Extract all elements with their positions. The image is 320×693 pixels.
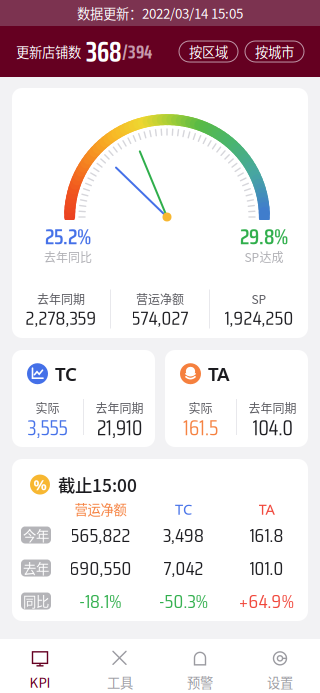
staticText: 104.0 [252, 411, 292, 445]
staticText: 21,910 [97, 411, 142, 445]
staticText: 574,027 [131, 302, 188, 333]
staticText: 按区域 [189, 42, 228, 61]
staticText: 去年同比 [44, 248, 92, 265]
staticText: 3,555 [27, 411, 67, 445]
staticText: -18.1% [79, 585, 122, 617]
staticText: 161.5 [183, 411, 218, 445]
staticText: 营运净额 [136, 290, 184, 307]
staticText: 368 [81, 28, 122, 75]
staticText: 去年同期 [37, 290, 85, 307]
staticText: 工具 [107, 672, 133, 692]
staticText: KPI [29, 672, 50, 692]
staticText: 今年 [23, 525, 49, 545]
staticText: 161.8 [249, 519, 283, 551]
staticText: 101.0 [249, 552, 283, 584]
staticText: 1,924,250 [224, 302, 293, 333]
staticText: 营运净额 [74, 499, 126, 519]
staticText: TA [258, 499, 274, 519]
staticText: 去年 [23, 558, 49, 578]
staticText: 设置 [267, 672, 293, 692]
staticText: 29.8% [240, 220, 288, 254]
staticText: +64.9% [238, 585, 294, 617]
staticText: 565,822 [70, 519, 130, 551]
staticText: 实际 [188, 399, 212, 416]
staticText: 25.2% [45, 220, 91, 254]
staticText: 数据更新：2022/03/14 15:05 [77, 3, 243, 23]
staticText: 截止15:00 [58, 472, 137, 497]
staticText: 按城市 [255, 42, 294, 61]
staticText: TA [208, 361, 230, 386]
staticText: -50.3% [158, 585, 208, 617]
button[interactable]: 工具 [80, 648, 160, 692]
staticText: 7,042 [163, 552, 203, 584]
staticText: 3,498 [163, 519, 204, 551]
staticText: TC [175, 499, 192, 519]
staticText: 去年同期 [95, 399, 143, 416]
staticText: 去年同期 [248, 399, 296, 416]
staticText: 690,550 [69, 552, 131, 584]
button[interactable]: 设置 [240, 648, 320, 692]
staticText: SP达成 [244, 248, 283, 265]
staticText: /394 [122, 36, 152, 67]
staticText: 更新店铺数 [16, 42, 81, 61]
staticText: 2,278,359 [25, 302, 96, 333]
staticText: 预警 [187, 672, 213, 692]
button[interactable]: KPI [0, 648, 80, 692]
staticText: TC [55, 361, 77, 386]
staticText: SP [251, 290, 266, 307]
staticText: % [33, 475, 46, 495]
button[interactable]: 按区域 [179, 41, 238, 62]
staticText: 同比 [23, 591, 49, 611]
staticText: 实际 [35, 399, 59, 416]
button[interactable]: 按城市 [245, 41, 304, 62]
button[interactable]: 预警 [160, 648, 240, 692]
